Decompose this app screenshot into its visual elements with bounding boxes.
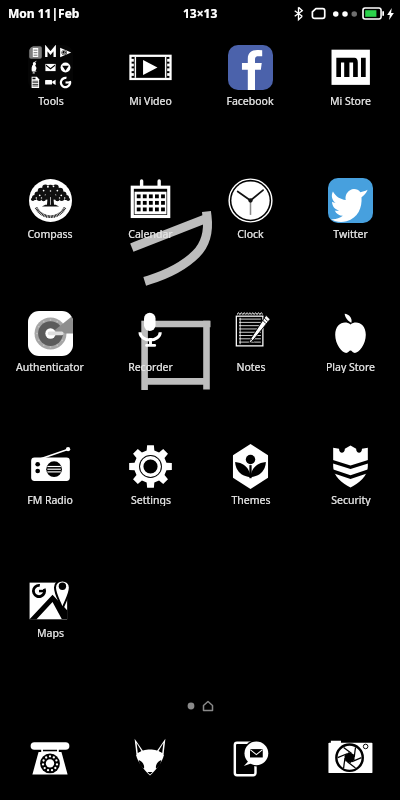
button[interactable]: Facebook — [205, 41, 295, 107]
staticText: Mi Video — [129, 94, 172, 107]
staticText: FM Radio — [27, 493, 73, 506]
staticText: Themes — [231, 493, 271, 506]
staticText: 13×13 — [183, 5, 218, 21]
button[interactable]: Twitter — [305, 174, 395, 240]
button[interactable]: Themes — [205, 440, 295, 506]
staticText: Compass — [27, 227, 73, 240]
staticText: Authenticator — [16, 360, 84, 373]
staticText: Maps — [37, 626, 64, 639]
staticText: Recorder — [128, 360, 173, 373]
button[interactable]: FM Radio — [5, 440, 95, 506]
staticText: Play Store — [326, 360, 375, 373]
button[interactable]: Clock — [205, 174, 295, 240]
button[interactable]: Play Store — [305, 307, 395, 373]
button[interactable]: Mi Video — [105, 41, 195, 107]
button[interactable]: Notes — [205, 307, 295, 373]
button[interactable]: Maps — [5, 573, 95, 639]
button[interactable]: Security — [305, 440, 395, 506]
staticText: Clock — [237, 227, 264, 240]
button[interactable]: Authenticator — [5, 307, 95, 373]
button[interactable]: Browser — [100, 736, 200, 782]
staticText: Notes — [236, 360, 266, 373]
staticText: Mon 11|Feb — [8, 5, 80, 21]
staticText: Calendar — [128, 227, 173, 240]
button[interactable]: Compass — [5, 174, 95, 240]
button[interactable]: Messaging — [200, 736, 300, 782]
button[interactable]: Mi Store — [305, 41, 395, 107]
staticText: Mi Store — [330, 94, 371, 107]
staticText: Facebook — [226, 94, 274, 107]
button[interactable]: Recorder — [105, 307, 195, 373]
staticText: Tools — [38, 94, 64, 107]
staticText: Settings — [131, 493, 171, 506]
button[interactable]: Tools — [5, 41, 95, 107]
button[interactable]: Camera — [300, 736, 400, 782]
staticText: Security — [331, 493, 371, 506]
button[interactable]: Settings — [105, 440, 195, 506]
button[interactable]: Phone — [0, 736, 100, 782]
button[interactable]: Calendar — [105, 174, 195, 240]
staticText: Twitter — [333, 227, 368, 240]
